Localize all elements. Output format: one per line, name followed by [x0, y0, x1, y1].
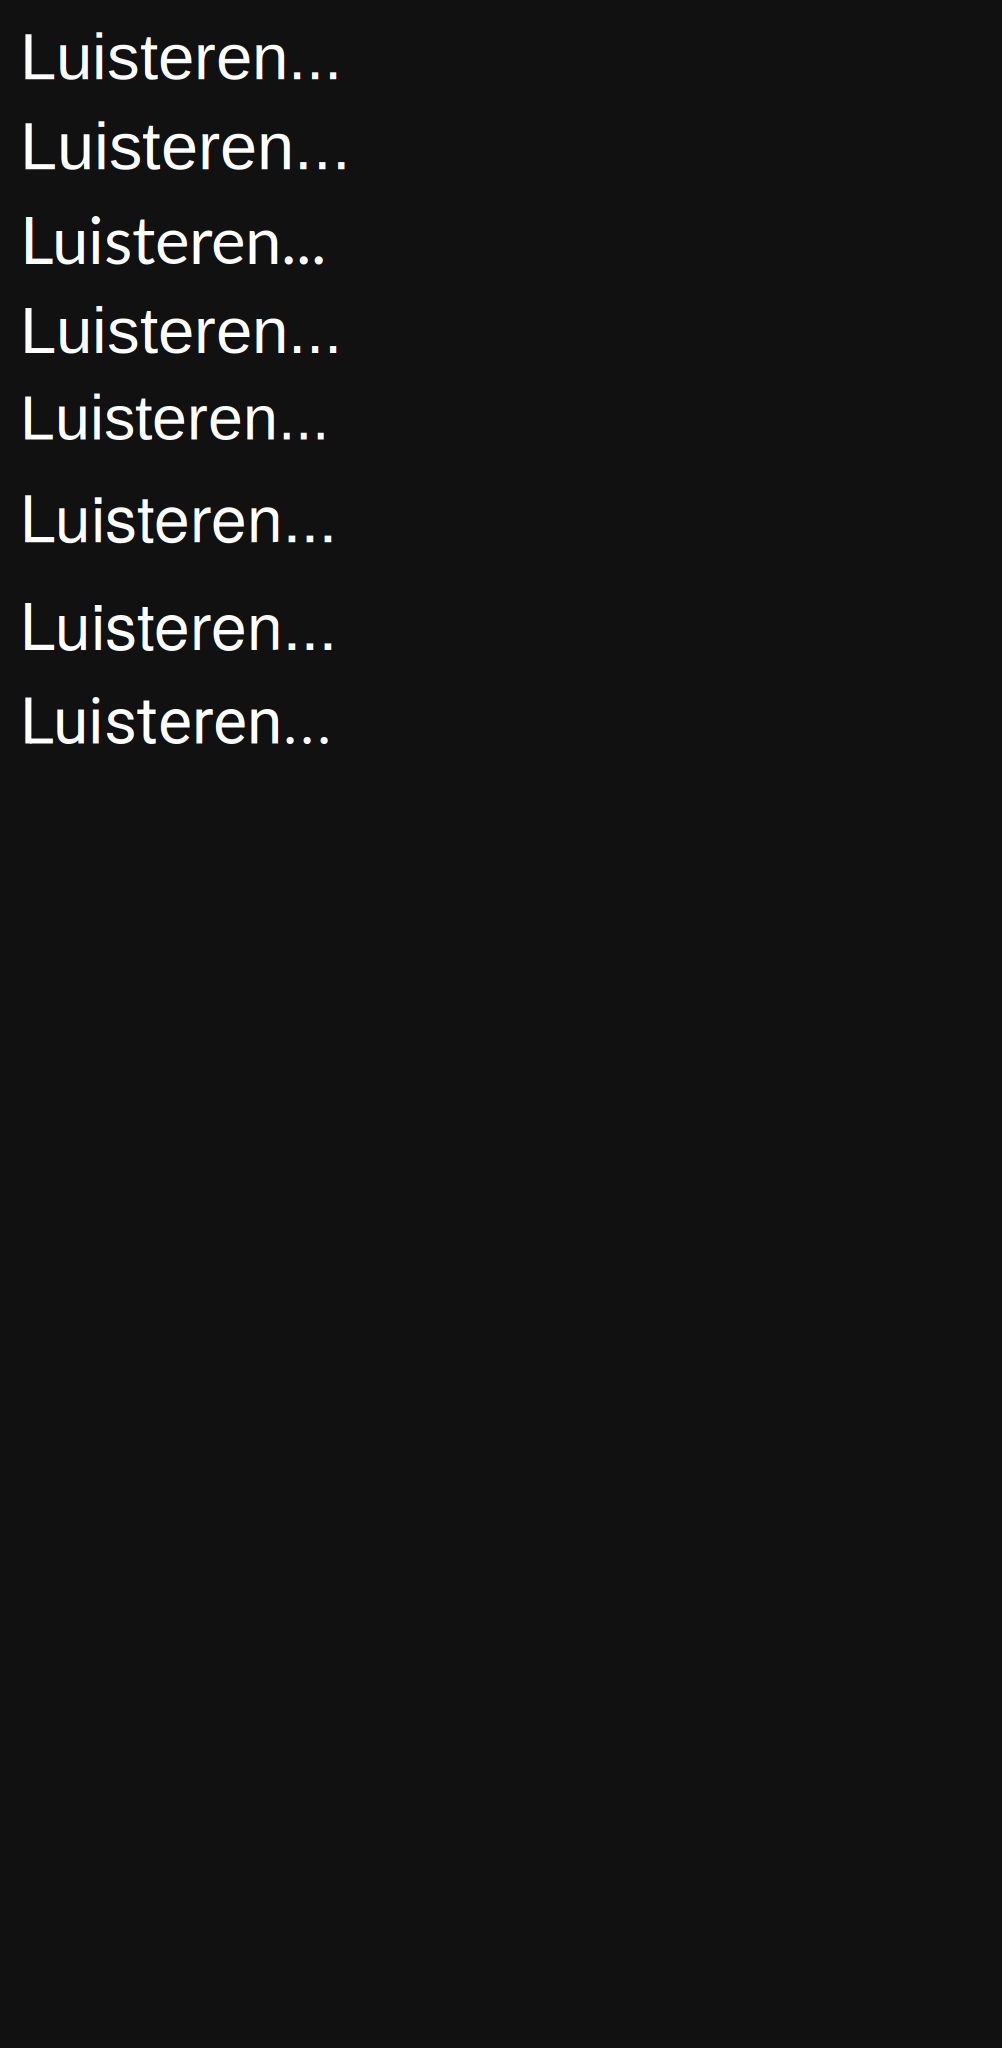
- staticText: Luisteren...: [20, 20, 342, 93]
- staticText: Luisteren...: [20, 199, 326, 278]
- staticText: Luisteren...: [20, 109, 351, 183]
- staticText: Luisteren...: [20, 576, 337, 668]
- staticText: Luisteren...: [20, 383, 329, 453]
- staticText: Luisteren...: [20, 469, 337, 560]
- staticText: Luisteren...: [20, 294, 342, 367]
- staticText: Luisteren...: [20, 684, 333, 759]
